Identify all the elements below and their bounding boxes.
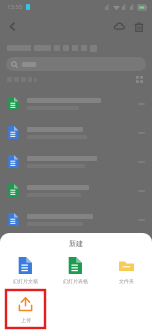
button[interactable]: 幻灯片文稿 (0, 255, 50, 286)
button[interactable]: 云端 (111, 18, 128, 35)
button[interactable] (0, 147, 152, 176)
staticText: 幻灯片表格 (63, 278, 88, 284)
button[interactable]: 幻灯片表格 (50, 255, 101, 286)
button[interactable] (0, 205, 152, 234)
staticText: 新建 (69, 239, 83, 248)
staticText: 文件夹 (119, 278, 134, 284)
button[interactable] (0, 118, 152, 147)
button[interactable]: 上传 (6, 290, 45, 328)
button[interactable]: 切换视图 (134, 74, 145, 85)
button[interactable] (0, 176, 152, 205)
button[interactable]: 删除 (130, 18, 147, 35)
button[interactable]: 文件夹 (101, 255, 152, 286)
staticText: 上传 (21, 317, 31, 323)
button[interactable] (0, 89, 152, 118)
staticText: 幻灯片文稿 (13, 278, 38, 284)
button[interactable]: 返回 (3, 17, 22, 36)
staticText: 13:55 (7, 3, 23, 11)
button[interactable] (6, 57, 146, 71)
